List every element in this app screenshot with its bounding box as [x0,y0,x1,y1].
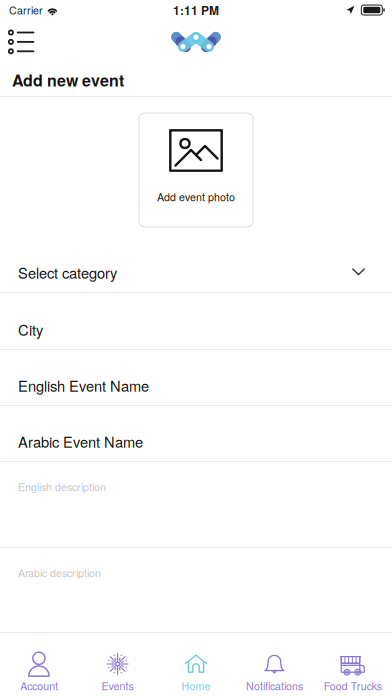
button[interactable]: Select category [0,237,392,293]
button[interactable]: Arabic description [0,548,392,633]
staticText: Arabic Event Name [18,431,143,452]
staticText: Food Trucks [324,678,382,693]
staticText: Arabic description [18,565,101,580]
staticText: English description [18,479,106,494]
staticText: Events [102,678,134,693]
button[interactable]: English Event Name [0,350,392,406]
button[interactable]: Add event photo [139,113,253,227]
staticText: Add new event [12,68,124,91]
button[interactable]: Account [0,633,78,696]
staticText: English Event Name [18,375,149,396]
staticText: Select category [18,262,117,283]
staticText: Notifications [246,678,303,693]
staticText: Add event photo [157,189,235,204]
button[interactable]: Home [157,633,235,696]
button[interactable]: Arabic Event Name [0,406,392,462]
button[interactable]: Events [78,633,157,696]
staticText: Home [181,678,210,693]
button[interactable]: Menu [0,20,70,64]
button[interactable]: English description [0,462,392,548]
button[interactable]: City [0,293,392,350]
staticText: City [18,319,43,340]
staticText: 1:11 PM [173,1,219,19]
staticText: Account [20,678,58,693]
button[interactable]: Food Trucks [314,633,392,696]
staticText: Carrier [9,2,43,18]
button[interactable]: Notifications [235,633,314,696]
